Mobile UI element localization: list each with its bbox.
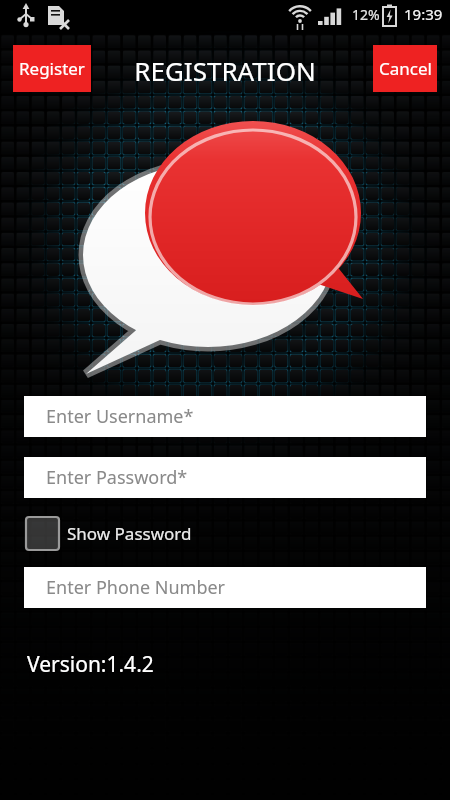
button[interactable]: Show Password: [24, 513, 224, 553]
button[interactable]: Enter Username*: [24, 396, 426, 437]
staticText: Enter Phone Number: [46, 575, 226, 600]
staticText: Register: [19, 57, 85, 80]
button[interactable]: Enter Phone Number: [24, 567, 426, 608]
button[interactable]: Enter Password*: [24, 457, 426, 498]
staticText: Show Password: [67, 522, 192, 545]
staticText: Cancel: [379, 57, 432, 80]
staticText: REGISTRATION: [134, 53, 316, 87]
staticText: Version:1.4.2: [27, 650, 154, 679]
button[interactable]: Register: [13, 45, 91, 92]
staticText: 19:39: [404, 4, 443, 24]
button[interactable]: Cancel: [373, 45, 437, 92]
staticText: 12%: [352, 5, 380, 24]
staticText: Enter Password*: [46, 465, 188, 490]
staticText: Enter Username*: [46, 404, 194, 429]
